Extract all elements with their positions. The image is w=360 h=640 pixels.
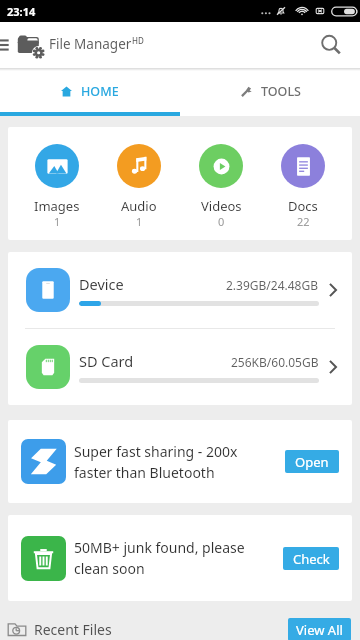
other: Open SD Card — [324, 357, 342, 377]
staticText: 256KB/60.05GB — [231, 354, 319, 370]
staticText: View All — [296, 621, 343, 639]
button[interactable]: Device — [8, 252, 352, 328]
staticText: Device — [79, 274, 124, 294]
staticText: 23:14 — [7, 4, 36, 19]
staticText: clean soon — [74, 559, 145, 578]
staticText: HD — [132, 35, 144, 46]
staticText: SD Card — [79, 351, 134, 371]
staticText: Audio — [121, 197, 157, 215]
other: Open Device — [324, 280, 342, 300]
button[interactable]: View All — [288, 618, 351, 640]
staticText: Images — [34, 197, 80, 215]
button[interactable]: Open navigation menu — [0, 23, 14, 67]
button[interactable]: Audio — [98, 127, 180, 240]
staticText: HOME — [81, 83, 119, 100]
button[interactable]: TOOLS — [180, 71, 360, 112]
staticText: faster than Bluetooth — [74, 463, 215, 482]
button[interactable]: Images — [16, 127, 98, 240]
staticText: 1 — [54, 214, 61, 229]
staticText: Super fast sharing - 200x — [74, 442, 238, 461]
button[interactable]: Super fast sharing - 200x — [8, 420, 352, 503]
staticText: 1 — [136, 214, 143, 229]
staticText: 2.39GB/24.48GB — [226, 277, 319, 293]
button[interactable]: Recent Files — [7, 620, 112, 639]
button[interactable]: Videos — [180, 127, 262, 240]
button[interactable]: Search — [314, 28, 348, 62]
staticText: File Manager — [49, 35, 132, 53]
staticText: 22 — [297, 214, 310, 229]
button[interactable]: Check — [283, 547, 339, 570]
button[interactable]: 50MB+ junk found, please — [8, 515, 352, 601]
staticText: Open — [295, 453, 329, 471]
staticText: 50MB+ junk found, please — [74, 538, 245, 557]
staticText: Recent Files — [34, 620, 112, 639]
button[interactable]: HOME — [0, 71, 180, 112]
button[interactable]: Docs — [262, 127, 344, 240]
staticText: Docs — [288, 197, 318, 215]
staticText: Check — [293, 550, 330, 568]
staticText: Videos — [201, 197, 242, 215]
button[interactable]: Open — [285, 450, 339, 473]
staticText: TOOLS — [261, 83, 301, 100]
button[interactable]: SD Card — [8, 329, 352, 405]
staticText: 0 — [218, 214, 225, 229]
